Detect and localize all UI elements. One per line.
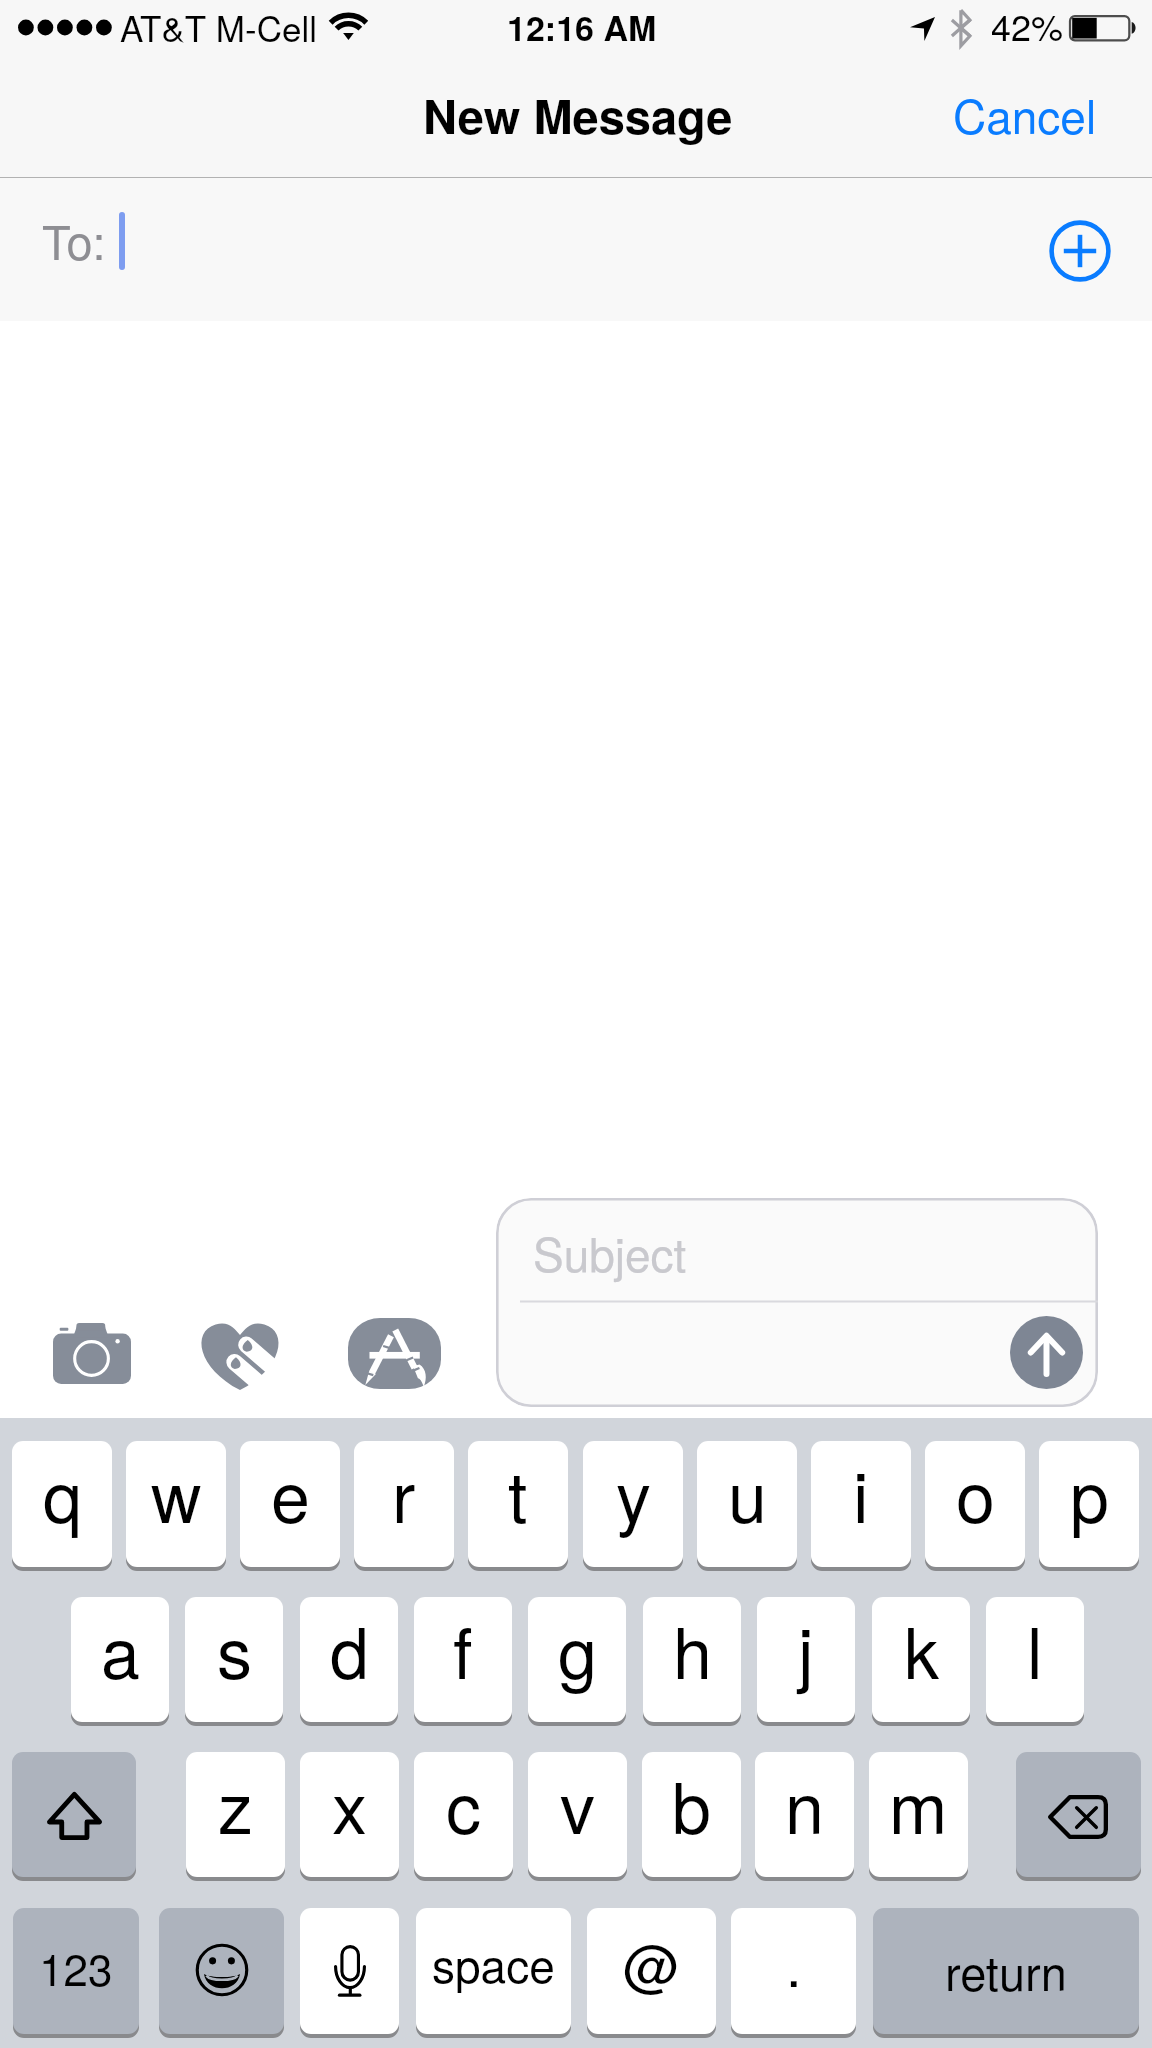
button[interactable]: j: [757, 1597, 855, 1722]
staticText: space: [432, 1930, 555, 1996]
button[interactable]: l: [986, 1597, 1084, 1722]
staticText: @: [623, 1923, 680, 2003]
staticText: n: [785, 1754, 824, 1854]
staticText: Cancel: [953, 81, 1097, 147]
staticText: 12:16 AM: [507, 3, 657, 52]
button[interactable]: y: [583, 1441, 683, 1567]
button[interactable]: d: [300, 1597, 398, 1722]
staticText: Subject: [533, 1219, 687, 1285]
button[interactable]: Add contact: [1040, 211, 1120, 291]
staticText: l: [1027, 1599, 1043, 1699]
button[interactable]: o: [925, 1441, 1025, 1567]
staticText: d: [330, 1599, 369, 1699]
button[interactable]: @: [587, 1908, 716, 2034]
button[interactable]: .: [731, 1908, 856, 2034]
button[interactable]: n: [755, 1752, 854, 1877]
button[interactable]: p: [1039, 1441, 1139, 1567]
button[interactable]: m: [869, 1752, 968, 1877]
button[interactable]: f: [414, 1597, 512, 1722]
button[interactable]: Subject: [496, 1198, 1098, 1407]
button[interactable]: App Store: [344, 1314, 444, 1394]
staticText: x: [332, 1754, 367, 1854]
staticText: To:: [42, 206, 106, 273]
staticText: z: [218, 1754, 253, 1854]
button[interactable]: x: [300, 1752, 399, 1877]
staticText: t: [508, 1443, 528, 1543]
staticText: 123: [39, 1935, 113, 1998]
button[interactable]: e: [240, 1441, 340, 1567]
button[interactable]: Dictation: [300, 1908, 399, 2034]
button[interactable]: 123: [13, 1908, 139, 2034]
staticText: j: [798, 1599, 814, 1699]
button[interactable]: h: [643, 1597, 741, 1722]
button[interactable]: k: [872, 1597, 970, 1722]
staticText: u: [728, 1443, 767, 1543]
button[interactable]: w: [126, 1441, 226, 1567]
staticText: c: [446, 1754, 481, 1854]
staticText: b: [672, 1754, 711, 1854]
staticText: return: [945, 1937, 1067, 2004]
staticText: a: [101, 1599, 140, 1699]
staticText: i: [853, 1443, 869, 1543]
button[interactable]: Emoji: [159, 1908, 284, 2034]
staticText: k: [904, 1599, 939, 1699]
button[interactable]: t: [468, 1441, 568, 1567]
button[interactable]: c: [414, 1752, 513, 1877]
staticText: p: [1070, 1443, 1109, 1543]
staticText: f: [453, 1599, 473, 1699]
button[interactable]: z: [186, 1752, 285, 1877]
staticText: r: [392, 1443, 416, 1543]
staticText: 42%: [991, 0, 1064, 52]
button[interactable]: Backspace: [1016, 1752, 1141, 1877]
staticText: g: [558, 1599, 597, 1699]
staticText: w: [151, 1443, 202, 1543]
button[interactable]: r: [354, 1441, 454, 1567]
button[interactable]: s: [185, 1597, 283, 1722]
staticText: New Message: [423, 81, 733, 148]
staticText: m: [889, 1754, 948, 1854]
staticText: AT&T M-Cell: [120, 2, 317, 52]
staticText: s: [217, 1599, 252, 1699]
button[interactable]: space: [416, 1908, 571, 2034]
button[interactable]: g: [528, 1597, 626, 1722]
staticText: .: [786, 1923, 802, 2003]
button[interactable]: Digital Touch: [192, 1316, 286, 1396]
staticText: e: [271, 1443, 310, 1543]
button[interactable]: return: [873, 1908, 1139, 2034]
button[interactable]: Shift: [12, 1752, 136, 1877]
button[interactable]: Cancel: [928, 62, 1128, 178]
button[interactable]: Camera: [44, 1316, 138, 1392]
staticText: v: [560, 1754, 595, 1854]
staticText: q: [43, 1443, 82, 1543]
button[interactable]: a: [71, 1597, 169, 1722]
staticText: o: [956, 1443, 995, 1543]
button[interactable]: q: [12, 1441, 112, 1567]
button[interactable]: i: [811, 1441, 911, 1567]
button[interactable]: Send: [1010, 1316, 1083, 1389]
button[interactable]: b: [642, 1752, 741, 1877]
button[interactable]: u: [697, 1441, 797, 1567]
staticText: y: [616, 1443, 651, 1543]
staticText: h: [673, 1599, 712, 1699]
button[interactable]: v: [528, 1752, 627, 1877]
